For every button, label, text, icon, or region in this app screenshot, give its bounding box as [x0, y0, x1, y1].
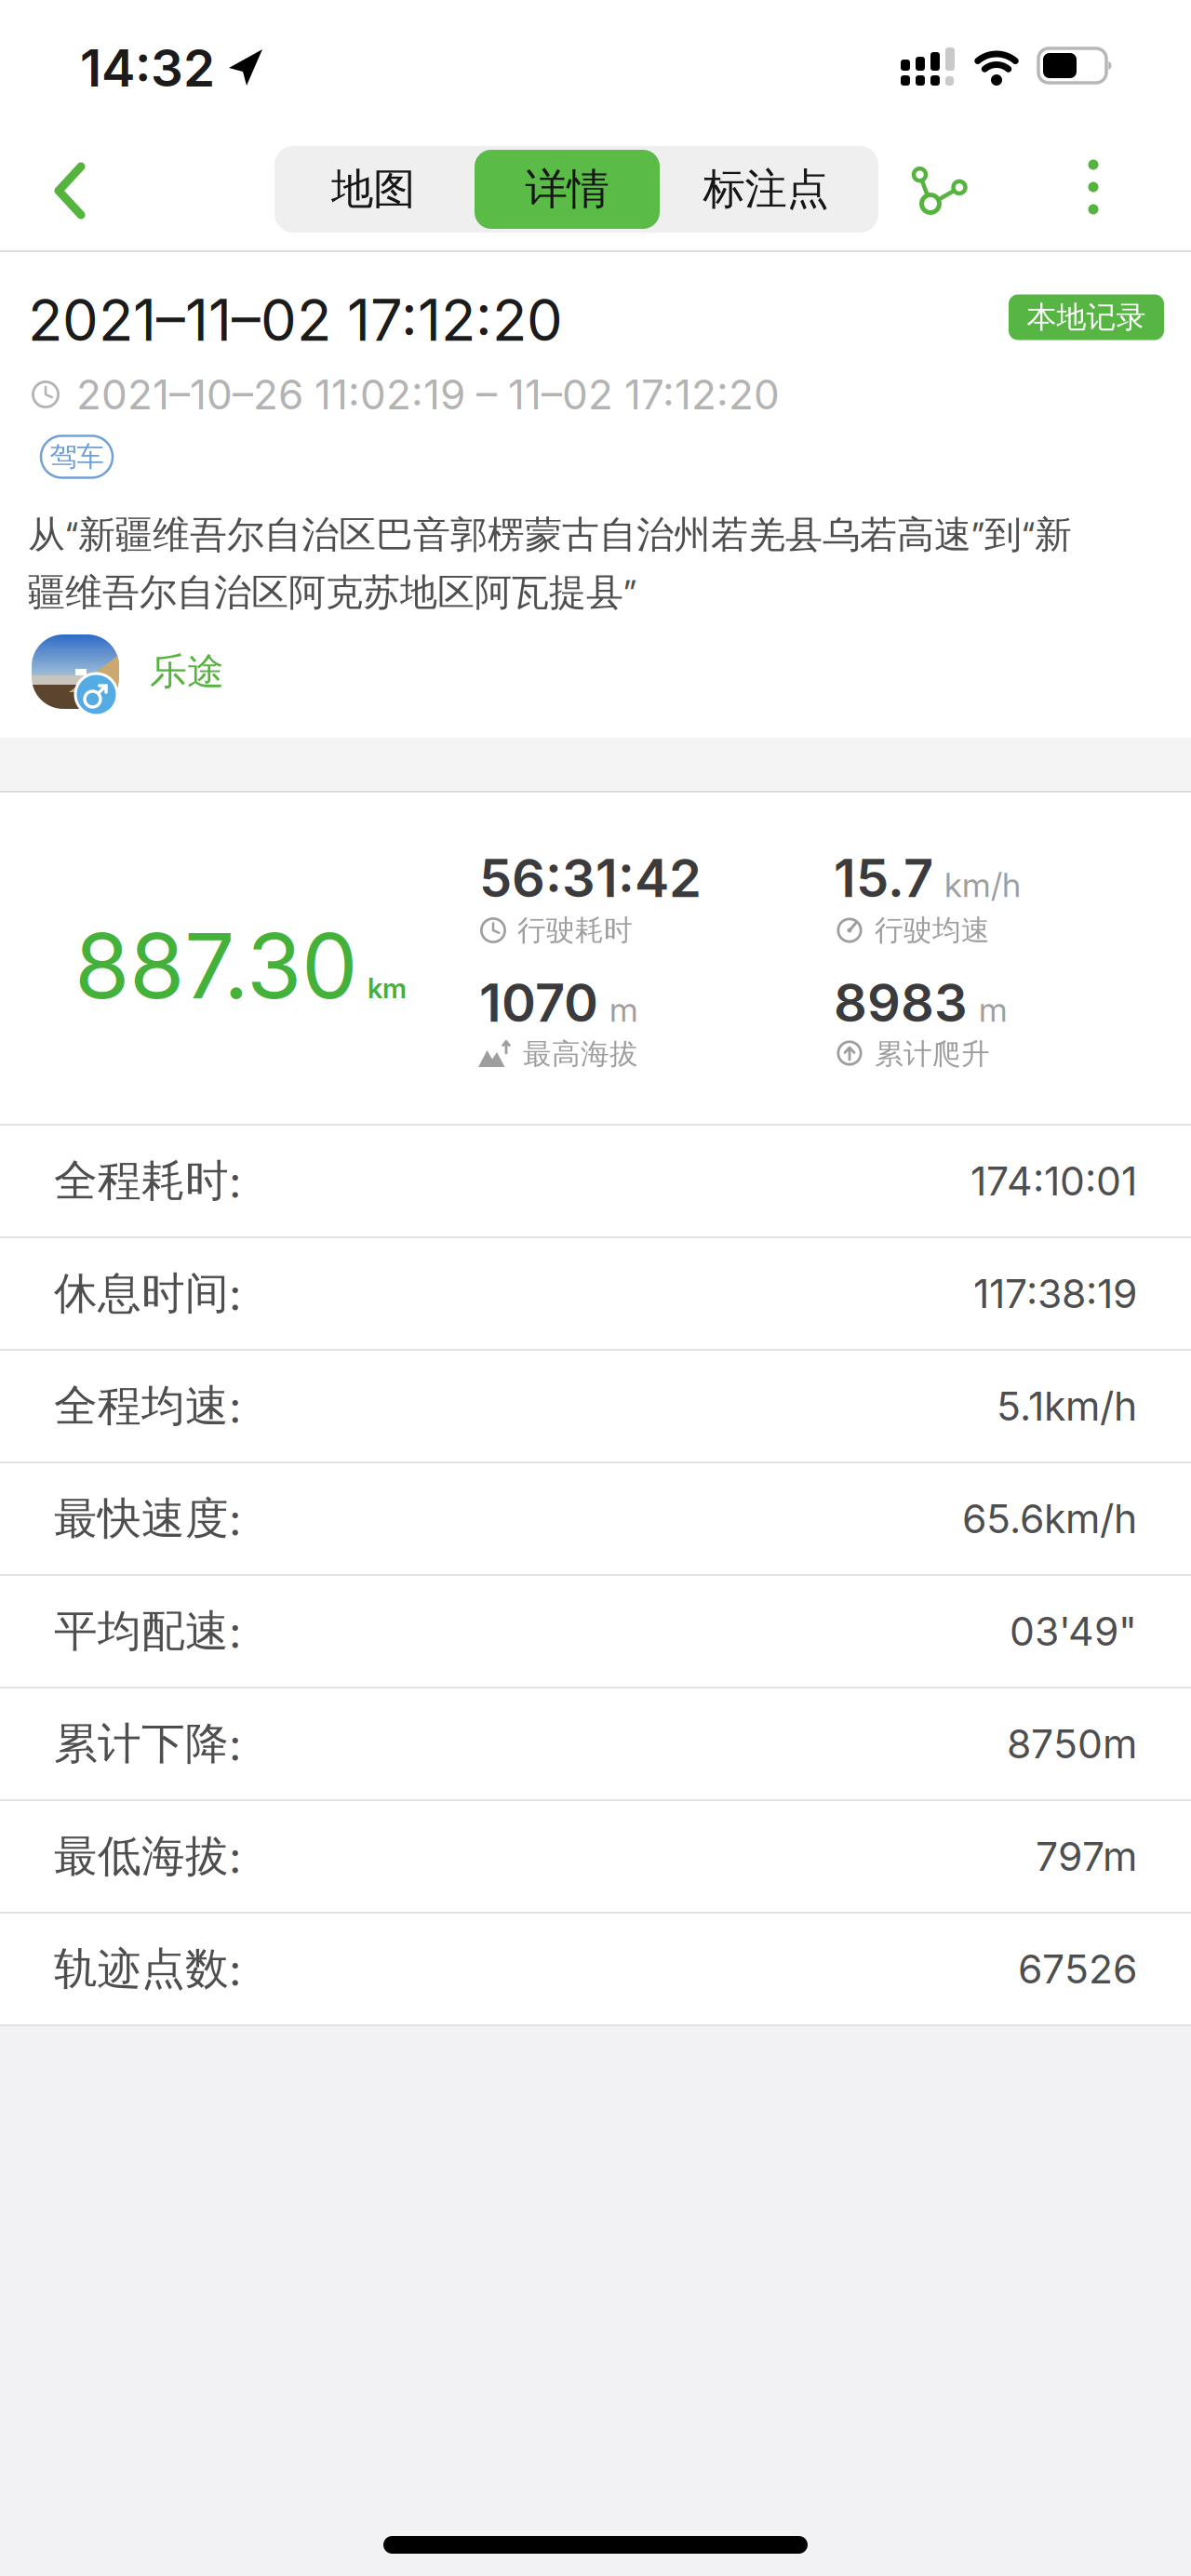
staticText: 从“新疆维吾尔自治区巴音郭楞蒙古自治州若羌县乌若高速”到“新 [28, 512, 1072, 558]
staticText: 5.1km/h [997, 1383, 1137, 1429]
button[interactable]: 标注点 [661, 146, 871, 233]
staticText: km/h [944, 865, 1021, 905]
button[interactable]: 地图 [274, 146, 472, 233]
staticText: 驾车 [50, 440, 104, 474]
staticText: 乐途 [150, 649, 224, 694]
staticText: 8750m [1007, 1720, 1137, 1767]
staticText: 67526 [1018, 1946, 1137, 1992]
staticText: 全程耗时: [54, 1154, 241, 1208]
button[interactable]: 乐途 [29, 632, 224, 712]
button[interactable]: Back [0, 143, 86, 238]
staticText: m [979, 990, 1008, 1029]
staticText: 最快速度: [54, 1492, 241, 1545]
staticText: 8983 [834, 972, 968, 1034]
button[interactable]: Share track [898, 153, 972, 228]
staticText: 2021–10–26 11:02:19 – 11–02 17:12:20 [76, 370, 780, 419]
staticText: 全程均速: [54, 1379, 241, 1433]
staticText: 轨迹点数: [54, 1942, 241, 1996]
staticText: 56:31:42 [479, 848, 702, 909]
staticText: 117:38:19 [973, 1270, 1137, 1317]
staticText: 2021–11–02 17:12:20 [28, 286, 563, 354]
staticText: 15.7 [834, 848, 933, 909]
staticText: 14:32 [80, 38, 215, 98]
staticText: 疆维吾尔自治区阿克苏地区阿瓦提县” [28, 570, 636, 615]
staticText: 797m [1036, 1833, 1137, 1880]
staticText: 平均配速: [54, 1605, 241, 1658]
staticText: 03'49" [1010, 1608, 1137, 1655]
staticText: 887.30 [74, 913, 358, 1018]
staticText: 行驶均速 [875, 913, 990, 948]
staticText: 休息时间: [54, 1267, 241, 1320]
staticText: 累计下降: [54, 1717, 241, 1770]
staticText: 本地记录 [1027, 299, 1146, 335]
staticText: m [609, 990, 638, 1029]
staticText: 行驶耗时 [517, 913, 633, 948]
button[interactable]: More [1075, 159, 1112, 215]
staticText: 地图 [331, 163, 415, 215]
button[interactable]: 详情 [475, 150, 660, 229]
staticText: 详情 [525, 163, 609, 215]
staticText: 65.6km/h [962, 1495, 1137, 1542]
staticText: 最高海拔 [523, 1037, 638, 1072]
staticText: 最低海拔: [54, 1830, 241, 1883]
staticText: 1070 [479, 972, 598, 1034]
staticText: 174:10:01 [970, 1158, 1137, 1204]
staticText: 累计爬升 [875, 1037, 990, 1072]
staticText: km [368, 972, 407, 1004]
staticText: 标注点 [703, 163, 829, 215]
